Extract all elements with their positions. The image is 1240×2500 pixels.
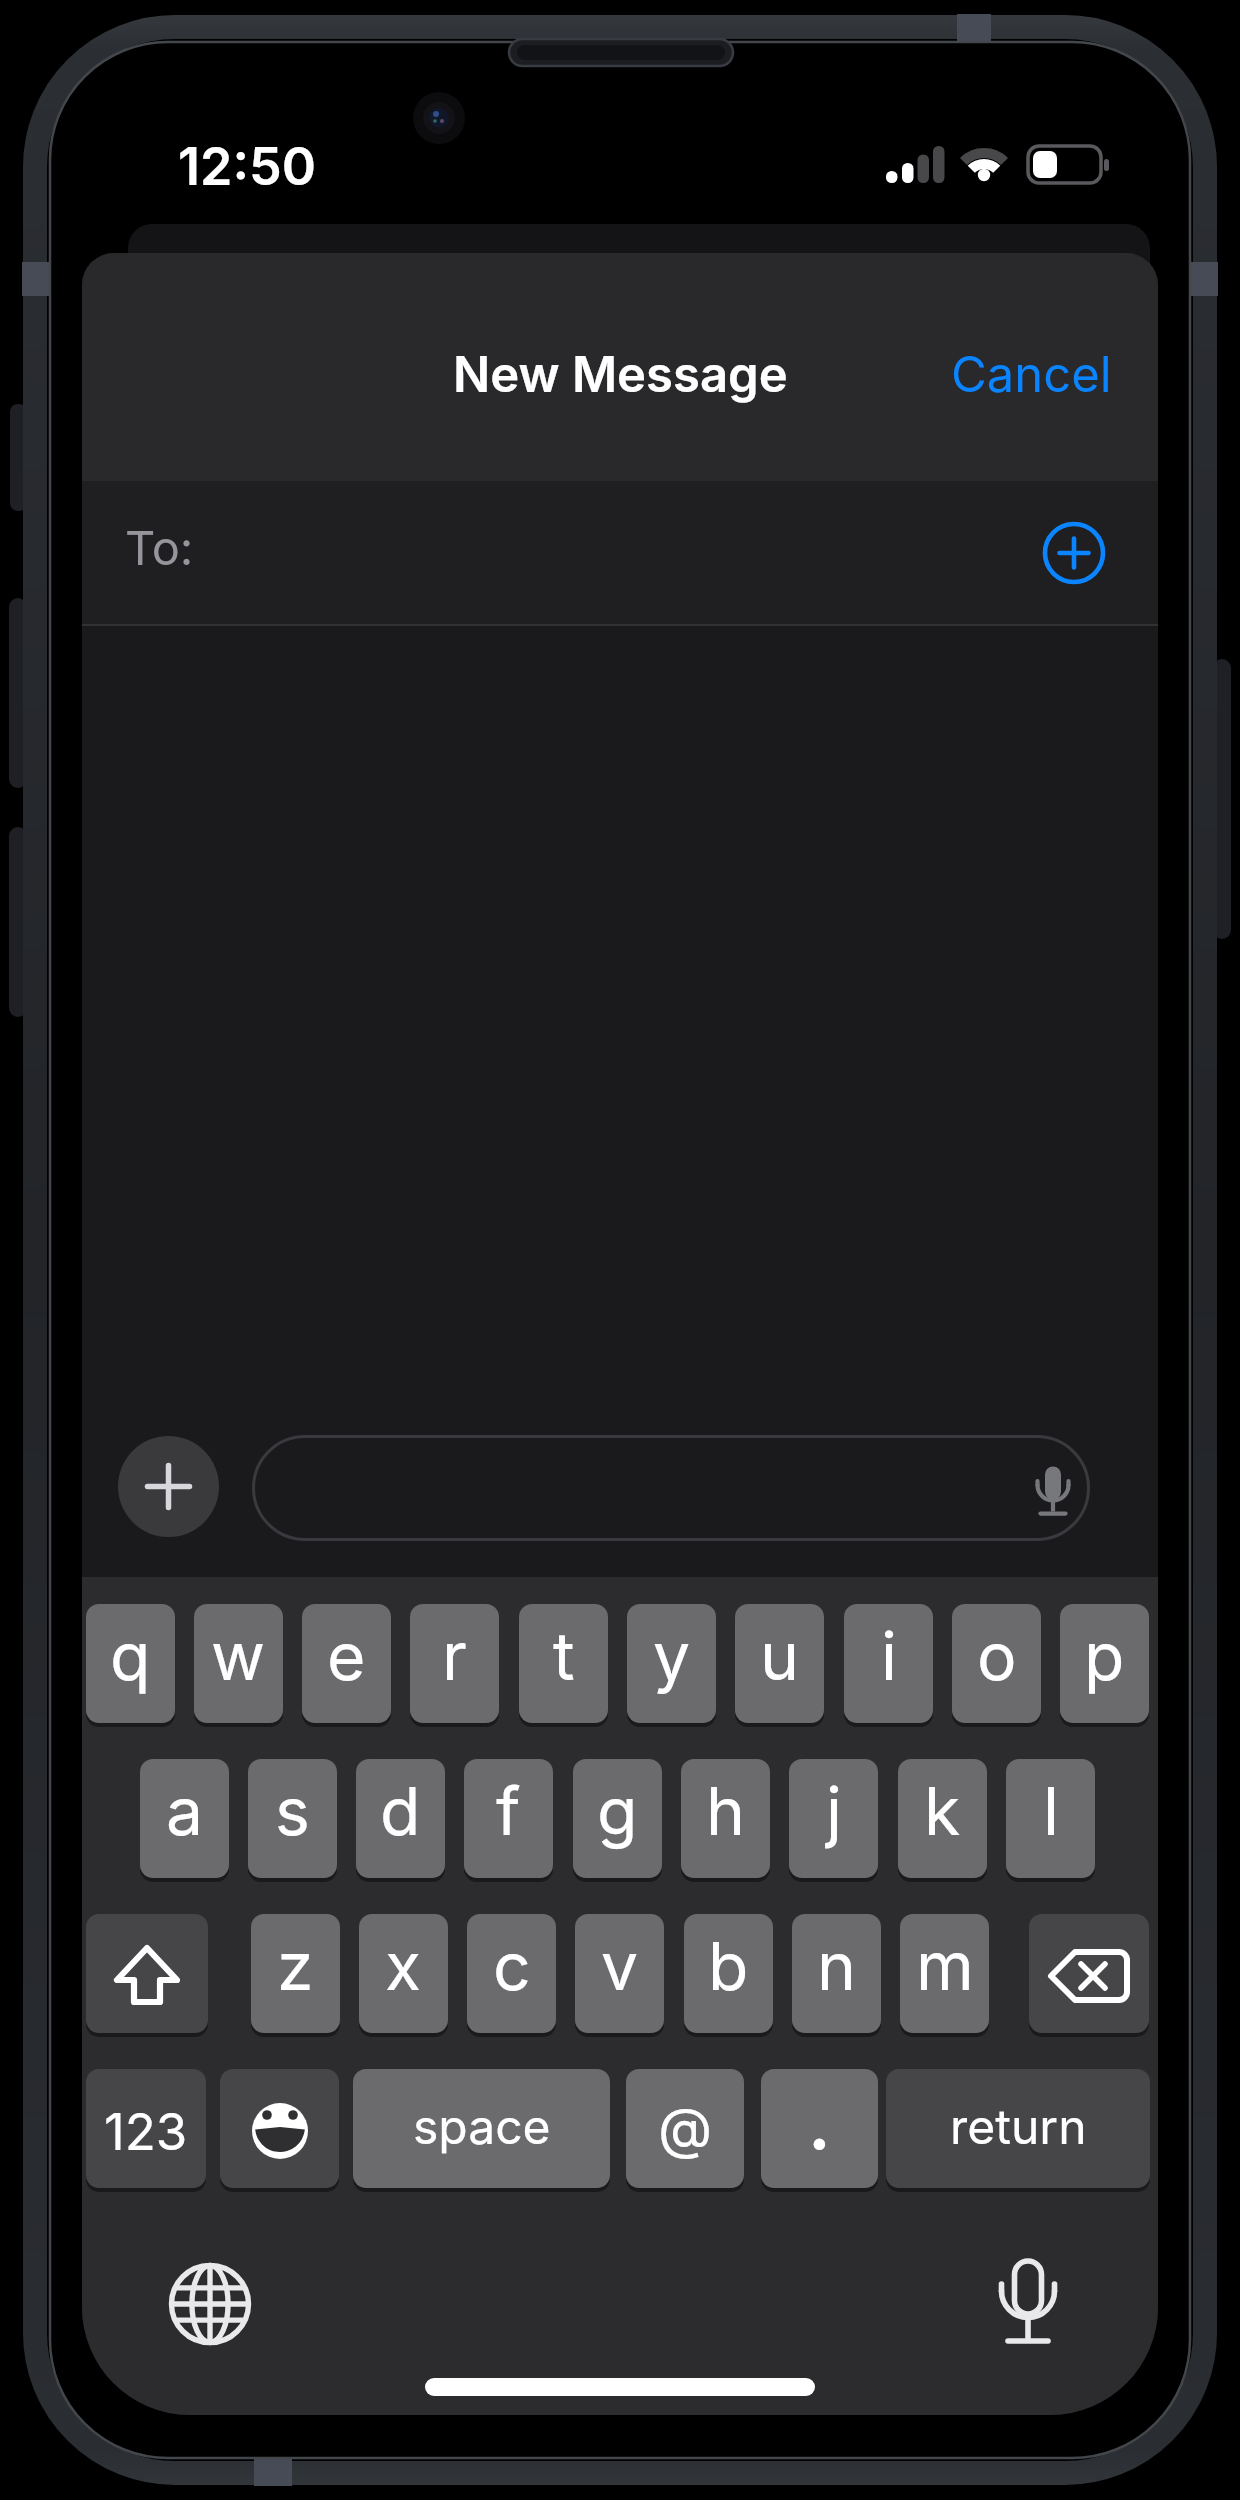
staticText: j [826, 1771, 842, 1851]
staticText: @ [658, 2094, 713, 2162]
staticText: v [601, 1926, 639, 2006]
button[interactable] [118, 1436, 219, 1537]
staticText: a [166, 1771, 204, 1851]
button[interactable]: v [575, 1914, 664, 2037]
staticText: To: [125, 519, 194, 576]
button[interactable]: return [886, 2069, 1150, 2192]
staticText: f [496, 1771, 521, 1851]
button[interactable]: b [684, 1914, 773, 2037]
button[interactable] [252, 1435, 1090, 1541]
button[interactable]: @ [626, 2069, 744, 2192]
staticText: w [211, 1616, 266, 1696]
button[interactable]: c [467, 1914, 556, 2037]
button[interactable]: e [302, 1604, 391, 1727]
button[interactable]: o [952, 1604, 1041, 1727]
button[interactable]: f [464, 1759, 553, 1882]
staticText: s [275, 1771, 310, 1851]
button[interactable]: r [410, 1604, 499, 1727]
staticText: p [1084, 1616, 1125, 1696]
staticText: New Message [453, 345, 788, 404]
button[interactable] [220, 2069, 339, 2192]
button[interactable] [1029, 1914, 1149, 2037]
staticText: Cancel [951, 345, 1112, 404]
button[interactable] [977, 2255, 1079, 2355]
button[interactable] [1042, 521, 1106, 585]
staticText: e [327, 1616, 366, 1696]
button[interactable]: y [627, 1604, 716, 1727]
staticText: t [553, 1616, 575, 1696]
button[interactable]: a [140, 1759, 229, 1882]
staticText: h [706, 1771, 746, 1851]
button[interactable]: space [353, 2069, 610, 2192]
staticText: q [110, 1616, 151, 1696]
button[interactable]: p [1060, 1604, 1149, 1727]
button[interactable]: 123 [86, 2069, 206, 2192]
button[interactable]: q [86, 1604, 175, 1727]
staticText: i [881, 1616, 897, 1696]
button[interactable]: To: [82, 481, 1158, 624]
staticText: y [653, 1616, 691, 1696]
staticText: 12:50 [178, 135, 316, 198]
staticText: return [950, 2097, 1087, 2155]
staticText: b [708, 1926, 749, 2006]
button[interactable]: u [735, 1604, 824, 1727]
button[interactable]: h [681, 1759, 770, 1882]
button[interactable]: d [356, 1759, 445, 1882]
button[interactable]: x [359, 1914, 448, 2037]
staticText: u [760, 1616, 800, 1696]
button[interactable]: w [194, 1604, 283, 1727]
staticText: l [1043, 1771, 1059, 1851]
button[interactable]: s [248, 1759, 337, 1882]
button[interactable] [86, 1914, 208, 2037]
staticText: o [977, 1616, 1017, 1696]
button[interactable] [170, 2264, 250, 2344]
button[interactable]: z [251, 1914, 340, 2037]
button[interactable]: . [761, 2069, 878, 2192]
staticText: n [817, 1926, 856, 2006]
button[interactable]: t [519, 1604, 608, 1727]
staticText: space [413, 2097, 551, 2155]
staticText: r [442, 1616, 467, 1696]
staticText: c [493, 1926, 531, 2006]
button[interactable]: l [1006, 1759, 1095, 1882]
button[interactable]: j [789, 1759, 878, 1882]
button[interactable]: m [900, 1914, 989, 2037]
staticText: g [597, 1771, 638, 1851]
staticText: m [916, 1926, 974, 2006]
staticText: 123 [104, 2101, 188, 2163]
staticText: k [924, 1771, 961, 1851]
staticText: z [277, 1926, 314, 2006]
button[interactable]: n [792, 1914, 881, 2037]
staticText: . [807, 2066, 832, 2170]
button[interactable]: Cancel [951, 345, 1112, 404]
staticText: d [380, 1771, 421, 1851]
button[interactable]: i [844, 1604, 933, 1727]
button[interactable]: g [573, 1759, 662, 1882]
button[interactable]: k [898, 1759, 987, 1882]
staticText: x [385, 1926, 422, 2006]
